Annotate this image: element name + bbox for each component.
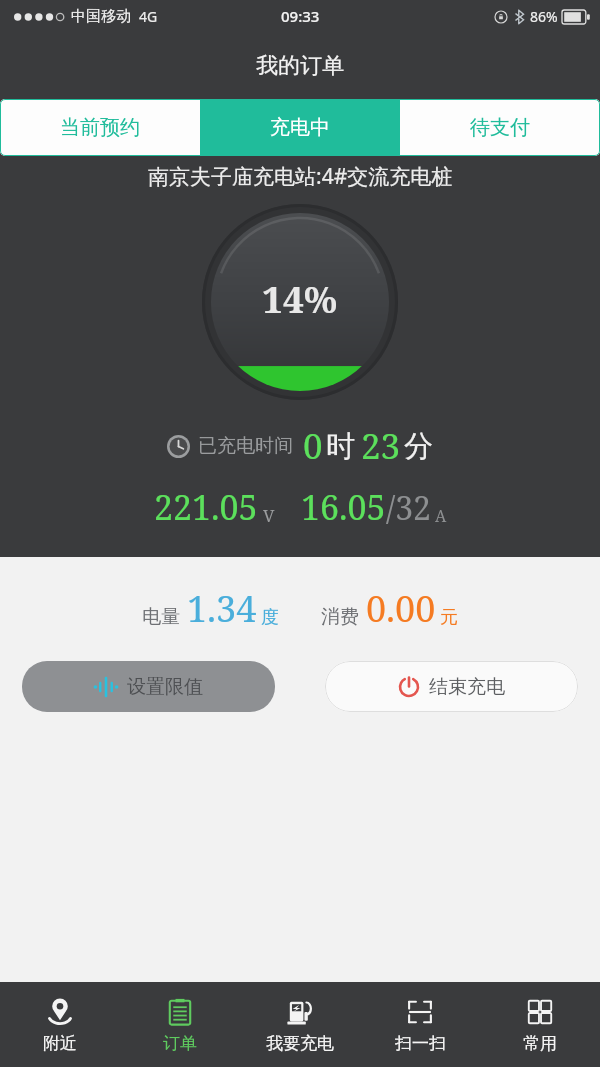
- staticText: 86%: [530, 7, 558, 26]
- staticText: 23: [361, 422, 401, 470]
- staticText: 0.00: [366, 584, 436, 633]
- staticText: 设置限值: [127, 675, 203, 699]
- button[interactable]: 常用: [480, 982, 600, 1067]
- staticText: 常用: [523, 1033, 557, 1054]
- staticText: V: [263, 504, 275, 527]
- staticText: 消费: [321, 605, 359, 629]
- staticText: 16.05: [301, 484, 386, 530]
- button[interactable]: 结束充电: [325, 661, 578, 712]
- staticText: 09:33: [281, 6, 320, 26]
- staticText: 221.05: [154, 484, 258, 530]
- button[interactable]: 设置限值: [22, 661, 275, 712]
- staticText: 度: [261, 606, 279, 629]
- staticText: 电量: [142, 605, 180, 629]
- staticText: 待支付: [470, 115, 530, 140]
- staticText: 当前预约: [60, 115, 140, 140]
- staticText: 我要充电: [266, 1033, 334, 1054]
- button[interactable]: 待支付: [400, 99, 600, 156]
- button[interactable]: 当前预约: [0, 99, 200, 156]
- button[interactable]: 我要充电: [240, 982, 360, 1067]
- button[interactable]: 附近: [0, 982, 120, 1067]
- staticText: 0: [303, 422, 323, 470]
- staticText: 4G: [139, 7, 158, 26]
- staticText: 充电中: [270, 115, 330, 140]
- staticText: A: [435, 505, 447, 527]
- staticText: /32: [386, 486, 431, 530]
- staticText: 14%: [262, 273, 338, 323]
- staticText: 订单: [163, 1033, 197, 1054]
- button[interactable]: 订单: [120, 982, 240, 1067]
- button[interactable]: 扫一扫: [360, 982, 480, 1067]
- staticText: 中国移动: [71, 7, 131, 26]
- staticText: 1.34: [187, 584, 257, 633]
- staticText: 结束充电: [429, 675, 505, 699]
- staticText: 分: [404, 428, 433, 465]
- staticText: 附近: [43, 1033, 77, 1054]
- staticText: 元: [440, 606, 458, 629]
- staticText: 时: [326, 428, 355, 465]
- staticText: 已充电时间: [198, 434, 293, 458]
- staticText: 我的订单: [256, 52, 344, 80]
- staticText: 扫一扫: [395, 1033, 446, 1054]
- button[interactable]: 充电中: [200, 99, 400, 156]
- staticText: 南京夫子庙充电站:4#交流充电桩: [148, 162, 453, 191]
